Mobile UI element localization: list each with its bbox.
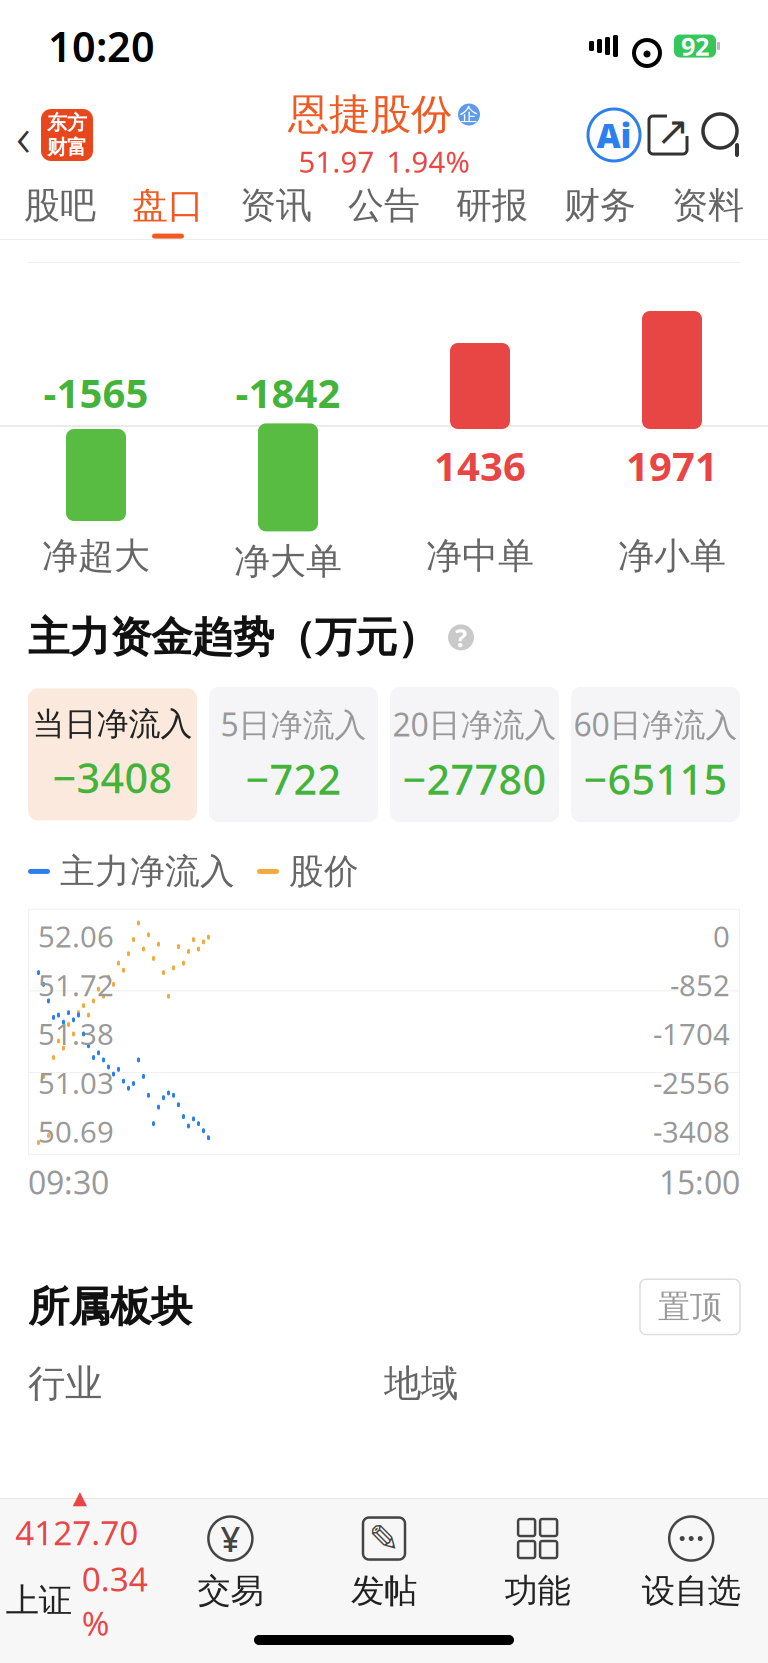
staticText: 所属板块	[28, 1281, 192, 1332]
staticText: 财务	[564, 183, 636, 228]
staticText: 资料	[672, 183, 744, 228]
staticText: 股价	[289, 850, 359, 893]
button[interactable]: ✎	[307, 1514, 461, 1611]
staticText: 研报	[456, 183, 528, 228]
button[interactable]: 分享	[640, 107, 696, 163]
staticText: 51.38	[38, 1014, 114, 1053]
staticText: 15:00	[659, 1161, 740, 1203]
button[interactable]: 当日净流入	[28, 688, 197, 821]
staticText: 1436	[434, 439, 526, 492]
staticText: -1565	[43, 366, 148, 419]
staticText: 地域	[384, 1360, 458, 1406]
staticText: 东方	[47, 110, 87, 135]
button[interactable]: 5日净流入	[209, 687, 378, 822]
staticText: ¥	[220, 1515, 240, 1561]
staticText: 92	[681, 29, 709, 63]
staticText: 60日净流入	[573, 703, 737, 745]
staticText: -852	[670, 965, 730, 1004]
staticText: 交易	[197, 1570, 263, 1611]
button[interactable]: 财务	[546, 171, 654, 247]
button[interactable]: AI 助手	[588, 109, 640, 161]
staticText: 净超大	[42, 534, 150, 578]
staticText: 企	[459, 103, 478, 126]
staticText: −65115	[583, 751, 727, 806]
staticText: ‹	[16, 98, 31, 172]
staticText: 上证	[6, 1580, 72, 1621]
button[interactable]: 功能	[461, 1514, 614, 1611]
staticText: ↗	[656, 108, 690, 154]
button[interactable]: ▲	[0, 1481, 154, 1645]
staticText: 0	[713, 917, 730, 956]
staticText: 10:20	[48, 19, 155, 73]
staticText: 当日净流入	[32, 704, 192, 744]
button[interactable]: 设自选	[614, 1514, 768, 1611]
staticText: -3408	[653, 1112, 730, 1151]
staticText: 置顶	[658, 1287, 722, 1326]
staticText: 公告	[348, 183, 420, 228]
staticText: 51.72	[38, 965, 114, 1004]
staticText: -2556	[653, 1063, 730, 1102]
staticText: ✎	[368, 1517, 399, 1560]
button[interactable]: 资料	[654, 171, 762, 247]
button[interactable]: 说明	[448, 624, 474, 650]
button[interactable]: 资讯	[222, 171, 330, 247]
staticText: 盘口	[132, 183, 204, 228]
staticText: 51.03	[38, 1063, 114, 1102]
staticText: 5日净流入	[220, 703, 366, 745]
staticText: 20日净流入	[392, 703, 556, 745]
staticText: 51.97	[298, 142, 374, 181]
staticText: −27780	[402, 751, 546, 806]
staticText: 股吧	[24, 183, 96, 228]
staticText: 净大单	[234, 539, 342, 584]
button[interactable]: 返回 东方财富	[0, 92, 93, 178]
staticText: 0.34%	[82, 1556, 148, 1645]
button[interactable]: 搜索	[696, 107, 768, 163]
staticText: -1704	[653, 1014, 730, 1053]
staticText: 1971	[626, 439, 718, 492]
staticText: 净小单	[618, 534, 726, 578]
staticText: -1842	[235, 366, 340, 419]
staticText: 4127.70	[15, 1510, 138, 1554]
staticText: 发帖	[351, 1570, 417, 1611]
staticText: ▲	[73, 1487, 87, 1508]
staticText: 52.06	[38, 917, 114, 956]
staticText: Ai	[596, 113, 631, 157]
staticText: 恩捷股份	[288, 89, 452, 140]
staticText: 09:30	[28, 1161, 109, 1203]
staticText: 行业	[28, 1360, 102, 1406]
staticText: 主力净流入	[60, 850, 235, 893]
staticText: 主力资金趋势（万元）	[28, 612, 438, 663]
staticText: −3408	[52, 750, 172, 805]
button[interactable]: 置顶	[640, 1279, 740, 1334]
button[interactable]: ¥	[154, 1514, 307, 1611]
button[interactable]: 股吧	[6, 171, 114, 247]
staticText: 资讯	[240, 183, 312, 228]
button[interactable]: 60日净流入	[571, 687, 740, 822]
staticText: 50.69	[38, 1112, 114, 1151]
staticText: 净中单	[426, 534, 534, 578]
button[interactable]: 20日净流入	[390, 687, 559, 822]
button[interactable]: 盘口	[114, 171, 222, 247]
staticText: 财富	[47, 135, 87, 160]
button[interactable]: 公告	[330, 171, 438, 247]
staticText: 设自选	[642, 1570, 741, 1611]
staticText: ?	[455, 621, 467, 654]
button[interactable]: 研报	[438, 171, 546, 247]
staticText: 功能	[505, 1570, 571, 1611]
staticText: 1.94%	[386, 142, 469, 181]
staticText: −722	[245, 751, 341, 806]
